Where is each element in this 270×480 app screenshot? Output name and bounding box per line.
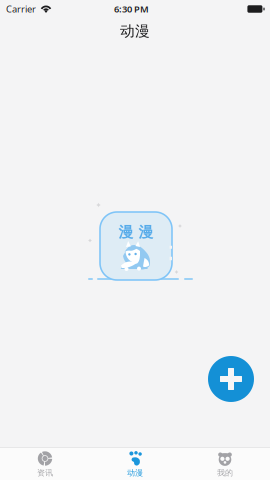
staticText: 动漫 xyxy=(127,468,143,478)
button[interactable]: 我的 xyxy=(180,448,270,480)
staticText: 动漫 xyxy=(120,22,150,40)
staticText: 资讯 xyxy=(37,468,53,478)
button[interactable]: Add xyxy=(208,356,254,402)
button[interactable]: 动漫 xyxy=(90,448,180,480)
staticText: 漫 xyxy=(118,223,133,241)
staticText: Carrier xyxy=(6,3,36,15)
staticText: 漫 xyxy=(138,223,153,241)
staticText: 我的 xyxy=(217,468,233,478)
button[interactable]: 资讯 xyxy=(0,448,90,480)
staticText: 6:30 PM xyxy=(114,3,149,15)
